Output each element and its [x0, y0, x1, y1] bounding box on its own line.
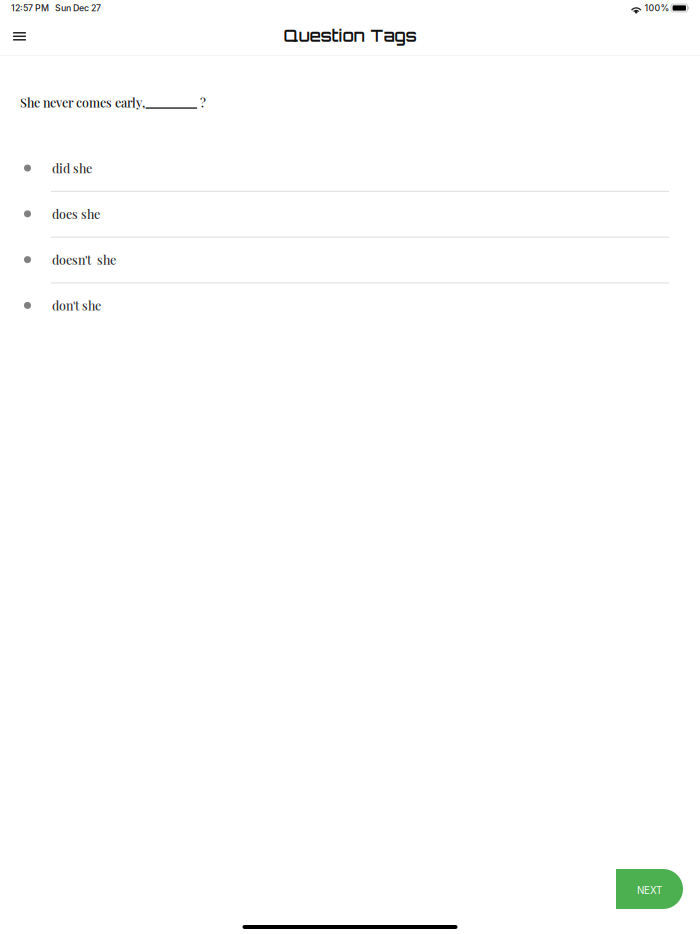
button[interactable]: did she: [0, 156, 700, 202]
button[interactable]: Menu: [0, 16, 39, 55]
staticText: ?: [200, 94, 206, 110]
staticText: 100%: [644, 3, 669, 13]
button[interactable]: don't she: [0, 294, 700, 340]
button[interactable]: does she: [0, 202, 700, 248]
staticText: don't she: [52, 297, 101, 314]
staticText: does she: [52, 206, 100, 222]
staticText: She never comes early,: [20, 94, 145, 110]
button[interactable]: doesn't she: [0, 248, 700, 294]
staticText: did she: [52, 160, 92, 176]
staticText: 12:57 PM Sun Dec 27: [11, 3, 101, 13]
staticText: doesn't she: [52, 251, 116, 268]
button[interactable]: NEXT: [616, 869, 683, 909]
staticText: Question Tags: [283, 25, 416, 46]
staticText: NEXT: [637, 885, 662, 896]
